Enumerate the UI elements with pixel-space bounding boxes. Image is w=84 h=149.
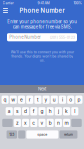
button[interactable]: a xyxy=(6,107,13,115)
staticText: t xyxy=(37,97,39,103)
button[interactable]: s xyxy=(14,107,21,115)
button[interactable] xyxy=(2,119,13,127)
staticText: g xyxy=(40,108,43,114)
staticText: (201) 555-0123 xyxy=(50,35,75,39)
staticText: 123 xyxy=(9,132,14,137)
button[interactable]: r xyxy=(26,96,33,104)
button[interactable]: u xyxy=(51,96,58,104)
staticText: w xyxy=(11,97,15,103)
staticText: f xyxy=(33,108,35,114)
staticText: z xyxy=(16,120,19,126)
button[interactable]: c xyxy=(30,119,37,127)
staticText: k xyxy=(65,108,68,114)
staticText: return xyxy=(64,132,73,137)
staticText: b xyxy=(49,120,52,126)
button[interactable]: x xyxy=(22,119,29,127)
button[interactable]: l xyxy=(71,107,78,115)
button[interactable]: space xyxy=(26,130,58,139)
button[interactable] xyxy=(18,130,25,139)
button[interactable]: Next xyxy=(0,85,84,93)
staticText: q xyxy=(4,97,7,103)
staticText: u xyxy=(53,97,56,103)
button[interactable] xyxy=(71,119,82,127)
staticText: o xyxy=(69,97,72,103)
staticText: space xyxy=(37,132,47,137)
staticText: p xyxy=(77,97,80,103)
button[interactable]: Menu xyxy=(0,6,11,15)
staticText: a xyxy=(8,108,11,114)
button[interactable]: w xyxy=(10,96,17,104)
button[interactable]: y xyxy=(42,96,50,104)
staticText: j xyxy=(58,108,59,114)
button[interactable]: d xyxy=(22,107,29,115)
button[interactable]: return xyxy=(59,130,77,139)
button[interactable]: 123 xyxy=(7,130,17,139)
button[interactable]: h xyxy=(47,107,54,115)
staticText: Phone Number xyxy=(9,35,41,40)
staticText: n xyxy=(57,120,60,126)
button[interactable]: k xyxy=(63,107,70,115)
button[interactable]: e xyxy=(18,96,25,104)
staticText: s xyxy=(16,108,19,114)
staticText: c xyxy=(32,120,35,126)
staticText: Enter your phone number so you can messa… xyxy=(7,19,77,29)
staticText: 100% xyxy=(73,1,81,5)
staticText: 9:41 AM xyxy=(37,1,49,5)
button[interactable]: j xyxy=(55,107,62,115)
staticText: y xyxy=(45,97,48,103)
button[interactable]: q xyxy=(1,96,9,104)
button[interactable]: p xyxy=(75,96,82,104)
staticText: v xyxy=(40,120,43,126)
staticText: Phone Number xyxy=(19,7,64,14)
staticText: Carrier xyxy=(2,1,13,5)
staticText: Next xyxy=(38,86,46,92)
button[interactable]: t xyxy=(34,96,41,104)
staticText: i xyxy=(62,97,63,103)
button[interactable]: z xyxy=(14,119,21,127)
button[interactable]: f xyxy=(30,107,37,115)
button[interactable]: m xyxy=(63,119,70,127)
staticText: x xyxy=(24,120,27,126)
button[interactable]: i xyxy=(59,96,66,104)
button[interactable]: b xyxy=(47,119,54,127)
staticText: d xyxy=(24,108,27,114)
button[interactable]: g xyxy=(38,107,45,115)
staticText: h xyxy=(49,108,52,114)
staticText: We'll use this to connect you with your … xyxy=(10,50,73,62)
staticText: l xyxy=(74,108,75,114)
button[interactable]: v xyxy=(38,119,45,127)
button[interactable]: o xyxy=(67,96,74,104)
staticText: e xyxy=(20,97,23,103)
staticText: m xyxy=(65,120,69,126)
button[interactable]: n xyxy=(55,119,62,127)
staticText: r xyxy=(29,97,31,103)
